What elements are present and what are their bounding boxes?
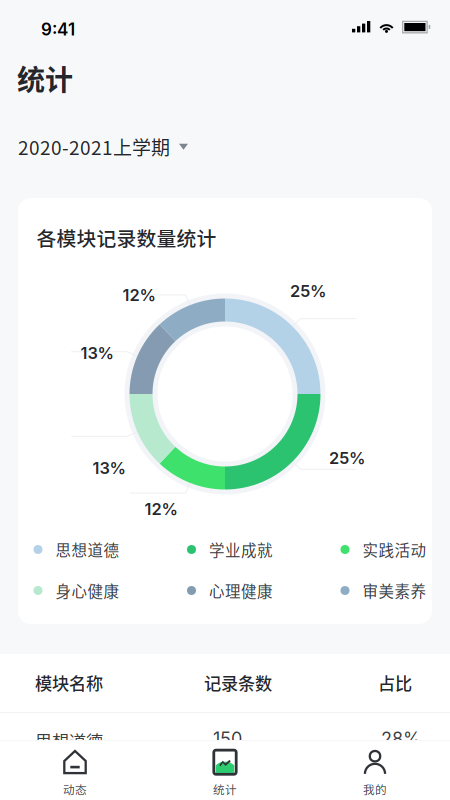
button[interactable]: 统计 bbox=[150, 740, 300, 800]
staticText: 占比 bbox=[378, 670, 412, 695]
staticText: 150 bbox=[213, 728, 242, 750]
staticText: 记录条数 bbox=[204, 670, 272, 695]
staticText: 9:41 bbox=[41, 19, 75, 40]
staticText: 实践活动 bbox=[362, 538, 426, 561]
staticText: 模块名称 bbox=[35, 670, 103, 695]
staticText: 13% bbox=[80, 343, 113, 363]
button[interactable]: 动态 bbox=[0, 740, 150, 800]
staticText: 12% bbox=[122, 285, 155, 305]
staticText: 25% bbox=[329, 448, 365, 468]
staticText: 12% bbox=[144, 499, 177, 519]
staticText: 13% bbox=[92, 458, 125, 478]
staticText: 我的 bbox=[363, 781, 387, 797]
staticText: 思想道德 bbox=[35, 728, 103, 753]
staticText: 动态 bbox=[63, 781, 87, 797]
staticText: 统计 bbox=[213, 781, 237, 797]
staticText: 审美素养 bbox=[362, 579, 426, 602]
staticText: 28% bbox=[381, 728, 421, 750]
staticText: 心理健康 bbox=[209, 579, 273, 602]
staticText: 身心健康 bbox=[55, 579, 119, 602]
staticText: 各模块记录数量统计 bbox=[36, 223, 216, 252]
button[interactable]: 2020-2021上学期 bbox=[18, 128, 188, 165]
button[interactable]: 我的 bbox=[300, 740, 450, 800]
staticText: 25% bbox=[290, 281, 326, 301]
staticText: 学业成就 bbox=[209, 538, 273, 561]
staticText: 思想道德 bbox=[55, 538, 119, 561]
staticText: 统计 bbox=[17, 58, 73, 98]
staticText: 2020-2021上学期 bbox=[18, 133, 170, 160]
